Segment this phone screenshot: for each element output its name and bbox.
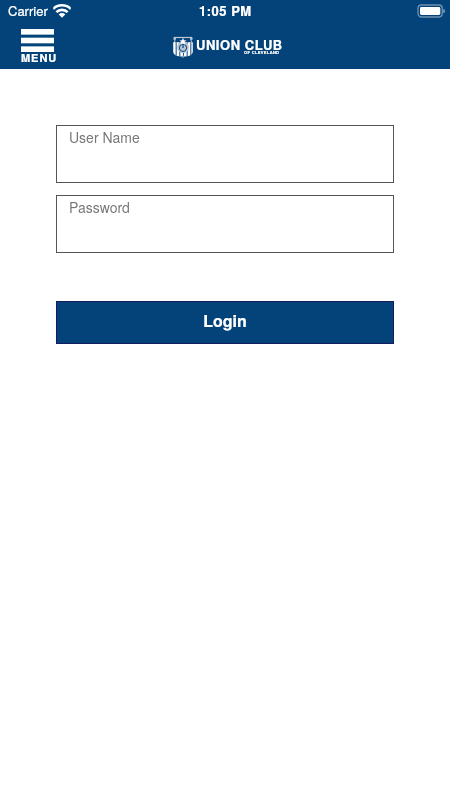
staticText: UNION CLUB xyxy=(196,35,283,54)
staticText: OF CLEVELAND xyxy=(244,49,280,55)
staticText: User Name xyxy=(69,127,140,147)
button[interactable]: Login xyxy=(57,302,393,343)
button[interactable]: User Name xyxy=(56,125,394,183)
button[interactable]: Password xyxy=(56,195,394,253)
button[interactable]: Menu xyxy=(14,23,65,69)
staticText: MENU xyxy=(21,50,58,65)
staticText: 1:05 PM xyxy=(199,1,252,20)
staticText: Password xyxy=(69,197,130,217)
staticText: Carrier xyxy=(8,1,48,20)
staticText: Login xyxy=(203,309,247,332)
